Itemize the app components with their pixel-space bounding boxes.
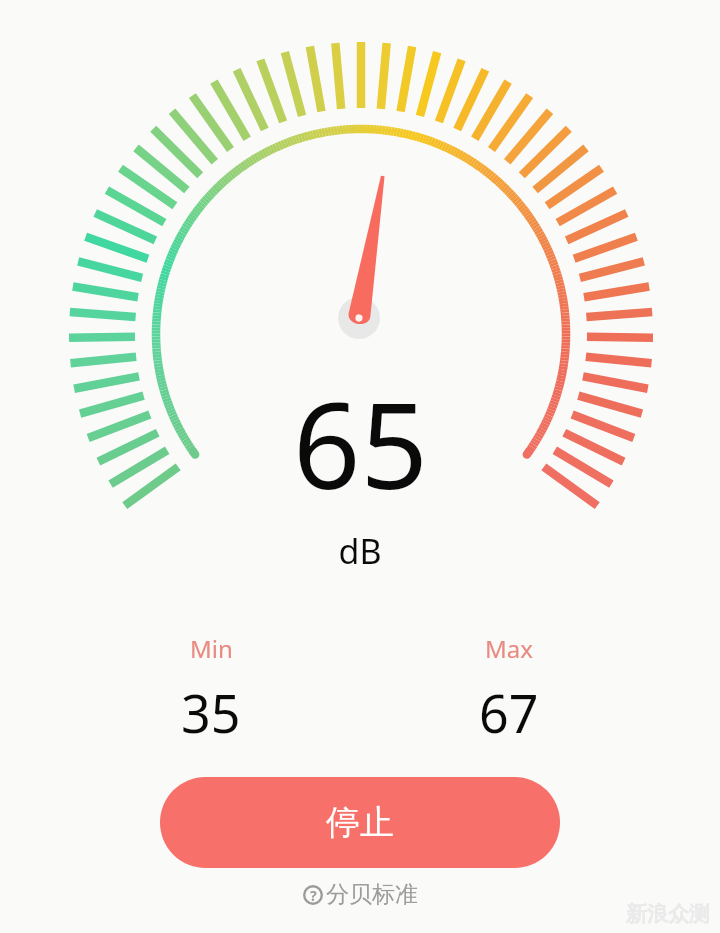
staticText: 分贝标准 — [326, 880, 418, 909]
staticText: Min — [190, 632, 233, 665]
button[interactable]: 停止 — [160, 777, 560, 868]
staticText: 35 — [181, 677, 241, 748]
staticText: 新浪众测 — [626, 901, 710, 927]
staticText: 65 — [293, 363, 428, 524]
staticText: ? — [310, 886, 317, 905]
other: Help: decibel standard — [303, 885, 323, 905]
staticText: Max — [485, 632, 533, 665]
staticText: 停止 — [326, 801, 394, 844]
button[interactable]: Help: decibel standard — [297, 877, 424, 912]
staticText: dB — [338, 528, 382, 574]
staticText: 67 — [479, 677, 539, 748]
